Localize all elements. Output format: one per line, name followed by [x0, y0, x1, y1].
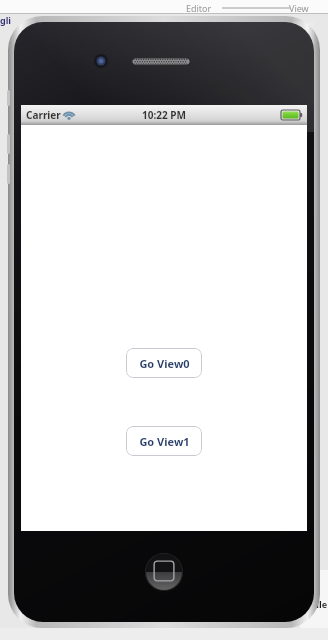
staticText: Editor	[186, 2, 212, 14]
other: Front camera	[94, 54, 108, 68]
other: Wi-Fi	[62, 109, 76, 121]
staticText: 10:22 PM	[142, 108, 186, 122]
button[interactable]: Go View0	[126, 348, 202, 378]
staticText: Go View1	[139, 434, 190, 449]
staticText: trolle	[303, 598, 328, 610]
staticText: gli	[0, 14, 12, 26]
staticText: Go View0	[139, 356, 190, 371]
other: Battery full	[281, 110, 302, 120]
button[interactable]: Go View1	[126, 426, 202, 456]
button[interactable]: Home	[145, 553, 183, 591]
staticText: Carrier	[26, 108, 61, 122]
staticText: View	[289, 2, 309, 14]
